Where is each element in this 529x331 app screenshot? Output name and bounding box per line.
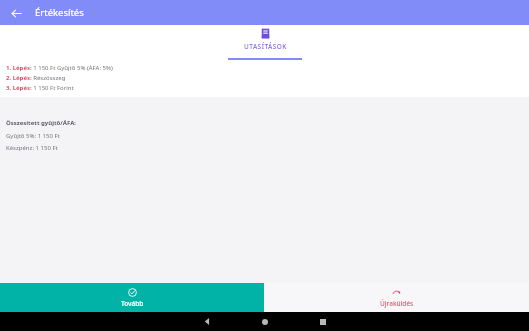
staticText: 2. Lépés: Részösszeg (6, 74, 66, 82)
button[interactable]: Recent apps (308, 312, 338, 331)
button[interactable]: Újraküldés (264, 283, 529, 312)
staticText: 1. Lépés: 1 150 Ft Gyűjtő 5% (ÁFA: 5%) (6, 64, 113, 72)
staticText: Újraküldés (380, 299, 414, 308)
staticText: Összesített gyűjtő/ÁFA: (6, 119, 76, 127)
staticText: 3. Lépés: 1 150 Ft Forint (6, 84, 74, 92)
staticText: UTASÍTÁSOK (244, 42, 287, 51)
button[interactable]: Back (192, 312, 222, 331)
staticText: Gyűjtő 5%: 1 150 Ft (6, 132, 60, 140)
button[interactable]: Tovább (0, 283, 264, 312)
button[interactable]: UTASÍTÁSOK (228, 25, 302, 60)
staticText: Tovább (121, 299, 144, 308)
button[interactable]: Back (6, 3, 26, 23)
button[interactable]: Home (250, 312, 280, 331)
staticText: Készpénz: 1 150 Ft (6, 144, 58, 152)
staticText: Értékesítés (35, 6, 84, 19)
